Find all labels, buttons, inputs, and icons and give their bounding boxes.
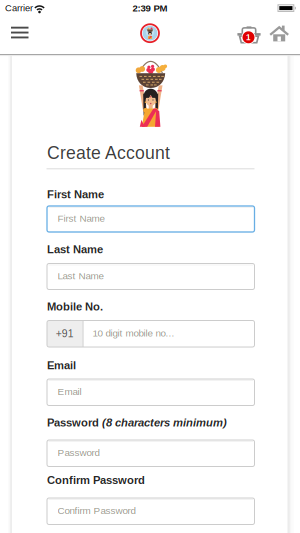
textField[interactable]: First Name — [57, 213, 254, 224]
textField[interactable]: Password — [57, 447, 254, 458]
staticText: Last Name — [47, 243, 103, 255]
button[interactable]: Menu — [2, 19, 38, 46]
textField[interactable]: 10 digit mobile no... — [92, 327, 254, 338]
button[interactable]: Home — [266, 22, 292, 46]
staticText: 10 digit mobile no... — [92, 327, 174, 338]
textField[interactable]: Last Name — [57, 270, 254, 281]
staticText: First Name — [47, 188, 104, 201]
staticText: Carrier — [5, 3, 33, 13]
button[interactable]: Cart — [234, 22, 264, 48]
textField[interactable]: Confirm Password — [57, 505, 254, 516]
staticText: 1 — [246, 33, 251, 42]
staticText: Password (8 characters minimum) — [47, 417, 227, 429]
staticText: Create Account — [47, 143, 170, 163]
staticText: Confirm Password — [47, 474, 145, 486]
staticText: First Name — [57, 213, 104, 224]
staticText: Confirm Password — [57, 505, 135, 516]
staticText: Email — [57, 386, 81, 397]
staticText: 2:39 PM — [132, 3, 167, 13]
staticText: Mobile No. — [47, 300, 103, 313]
staticText: Email — [47, 359, 76, 372]
staticText: Password — [57, 447, 99, 458]
staticText: Last Name — [57, 270, 103, 281]
textField[interactable]: Email — [57, 386, 254, 397]
staticText: +91 — [56, 328, 74, 339]
